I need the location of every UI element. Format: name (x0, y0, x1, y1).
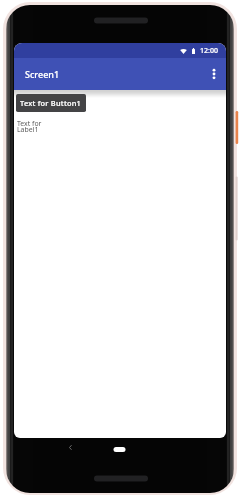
button[interactable]: Home (108, 443, 131, 455)
button[interactable]: Text for Button1 (16, 94, 86, 112)
staticText: Label1 (17, 125, 39, 134)
staticText: Screen1 (25, 68, 60, 80)
button[interactable]: Back (62, 441, 79, 454)
button[interactable]: More options (203, 63, 225, 85)
staticText: 12:00 (200, 46, 218, 56)
staticText: Text for (17, 119, 42, 128)
staticText: Text for Button1 (20, 98, 82, 108)
